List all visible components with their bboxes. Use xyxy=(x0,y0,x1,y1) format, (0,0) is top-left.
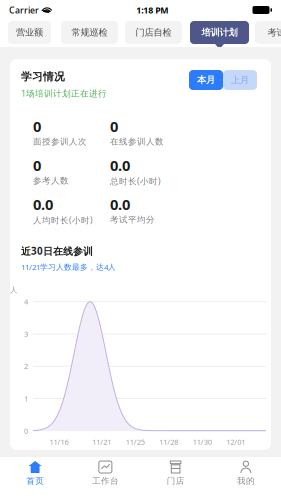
staticText: 总时长(小时) xyxy=(110,175,161,187)
button[interactable]: 门店 xyxy=(140,460,211,486)
staticText: 1:18 PM xyxy=(136,4,168,16)
button[interactable]: 营业额 xyxy=(8,21,51,44)
staticText: 工作台 xyxy=(92,475,119,486)
button[interactable]: 工作台 xyxy=(70,460,140,486)
staticText: 常规巡检 xyxy=(71,27,107,38)
staticText: 面授参训人次 xyxy=(33,136,87,147)
button[interactable]: 培训计划 xyxy=(190,21,249,44)
staticText: 人 xyxy=(10,285,17,295)
button[interactable]: 常规巡检 xyxy=(61,21,118,44)
staticText: 11/28 xyxy=(159,437,178,447)
staticText: 4 xyxy=(24,296,28,307)
staticText: 考试平均分 xyxy=(110,214,155,225)
staticText: 11/16 xyxy=(49,437,68,447)
staticText: 11/21学习人数最多，达4人 xyxy=(21,262,116,272)
staticText: 门店 xyxy=(167,475,185,486)
staticText: 11/25 xyxy=(126,437,145,447)
staticText: 本月 xyxy=(197,74,215,86)
staticText: 0 xyxy=(33,116,41,136)
staticText: 1 xyxy=(24,393,28,404)
staticText: 0 xyxy=(110,116,118,136)
staticText: 营业额 xyxy=(16,27,43,38)
staticText: 近30日在线参训 xyxy=(21,244,93,258)
staticText: 门店自检 xyxy=(135,27,171,38)
staticText: 学习情况 xyxy=(21,70,65,83)
button[interactable]: 本月 xyxy=(189,70,223,90)
button[interactable]: 上月 xyxy=(223,70,257,90)
staticText: 在线参训人数 xyxy=(110,136,164,147)
button[interactable]: 门店自检 xyxy=(125,21,182,44)
button[interactable]: 我的 xyxy=(211,460,281,486)
staticText: 12/01 xyxy=(226,437,245,447)
staticText: 培训计划 xyxy=(201,27,237,38)
staticText: 11/30 xyxy=(193,437,212,447)
staticText: 0.0 xyxy=(110,194,130,214)
staticText: Carrier xyxy=(9,4,39,16)
staticText: 参考人数 xyxy=(33,175,69,186)
staticText: 0.0 xyxy=(33,194,53,214)
staticText: 0.0 xyxy=(110,155,130,175)
staticText: 考试 xyxy=(267,27,281,38)
staticText: 人均时长(小时) xyxy=(33,214,93,226)
staticText: 上月 xyxy=(231,74,249,86)
button[interactable]: 首页 xyxy=(0,460,70,486)
staticText: 我的 xyxy=(237,475,255,486)
button[interactable]: 考试 xyxy=(255,21,281,44)
staticText: 首页 xyxy=(26,475,44,486)
staticText: 11/21 xyxy=(92,437,111,447)
staticText: 1场培训计划正在进行 xyxy=(21,87,107,99)
staticText: 0 xyxy=(24,426,28,436)
staticText: 2 xyxy=(24,361,28,371)
staticText: 3 xyxy=(24,329,28,339)
staticText: 0 xyxy=(33,155,41,175)
